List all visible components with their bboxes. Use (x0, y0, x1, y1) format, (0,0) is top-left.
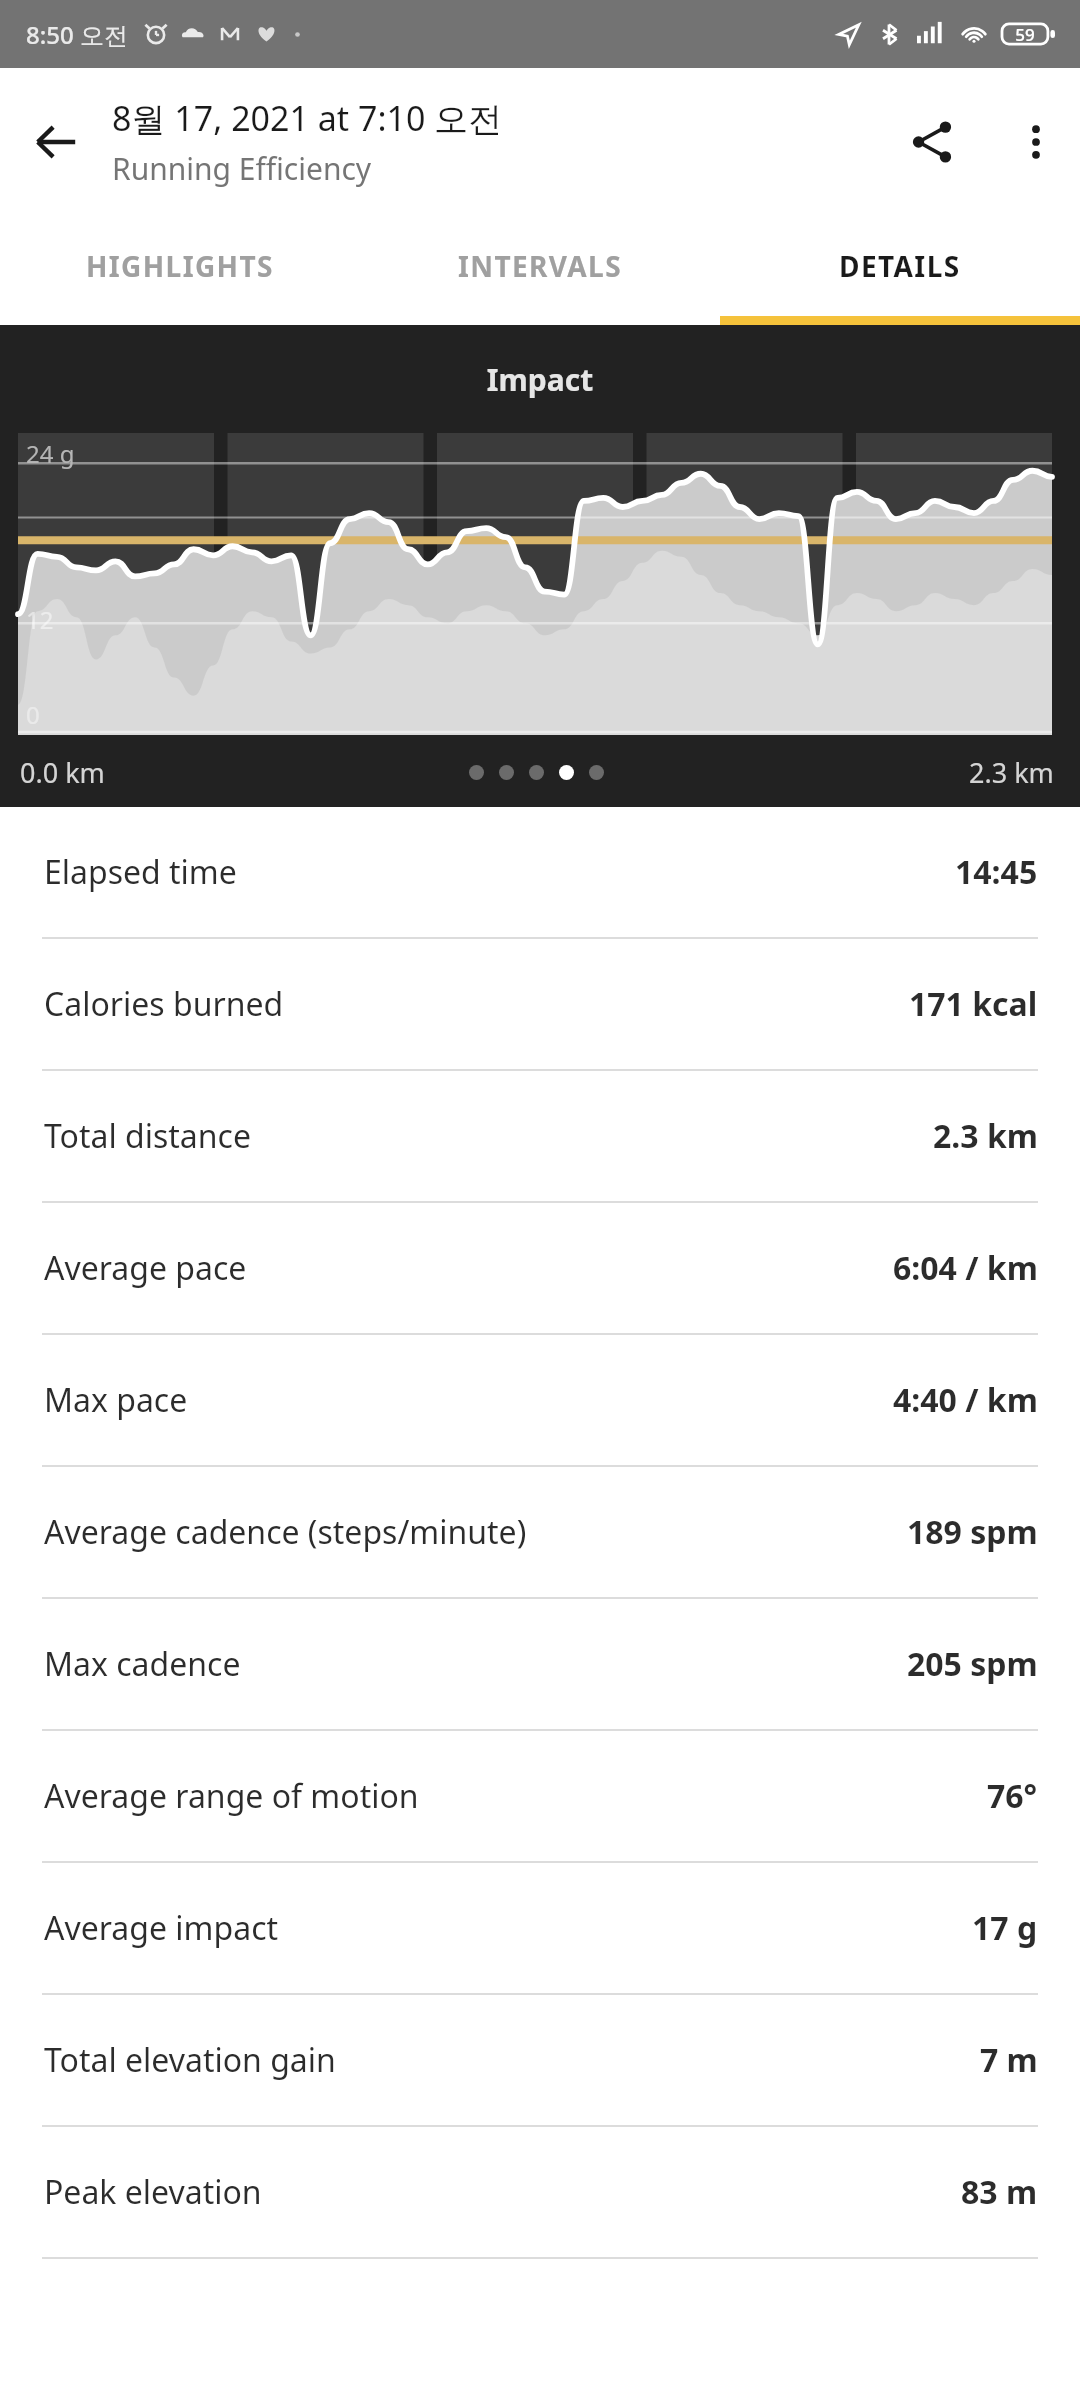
button[interactable]: DETAILS (720, 216, 1080, 316)
staticText: 8:50 오전 (26, 18, 128, 51)
button[interactable]: Average range of motion (0, 1731, 1080, 1863)
staticText: Peak elevation (44, 2170, 262, 2214)
staticText: DETAILS (839, 247, 961, 285)
staticText: 0 (26, 698, 40, 731)
button[interactable]: Average impact (0, 1863, 1080, 1995)
staticText: Total distance (44, 1114, 251, 1158)
staticText: Calories burned (44, 982, 284, 1026)
staticText: 76° (987, 1774, 1038, 1818)
button[interactable]: Calories burned (0, 939, 1080, 1071)
staticText: Average cadence (steps/minute) (44, 1510, 527, 1554)
button[interactable]: Average pace (0, 1203, 1080, 1335)
staticText: 59 (1002, 23, 1048, 46)
staticText: Elapsed time (44, 850, 237, 894)
button[interactable]: Max cadence (0, 1599, 1080, 1731)
staticText: Impact (0, 359, 1080, 400)
staticText: 205 spm (907, 1642, 1038, 1686)
button[interactable]: Average cadence (steps/minute) (0, 1467, 1080, 1599)
staticText: 2.3 km (933, 1114, 1038, 1158)
staticText: 4:40 / km (893, 1378, 1038, 1422)
staticText: INTERVALS (458, 247, 622, 285)
staticText: 83 m (961, 2170, 1038, 2214)
staticText: 2.3 km (969, 754, 1054, 791)
button[interactable]: More options (992, 68, 1080, 216)
button[interactable]: Max pace (0, 1335, 1080, 1467)
button[interactable]: Back (0, 68, 112, 216)
button[interactable]: Total elevation gain (0, 1995, 1080, 2127)
button[interactable]: Elapsed time (0, 807, 1080, 939)
button[interactable]: HIGHLIGHTS (0, 216, 360, 316)
staticText: 189 spm (907, 1510, 1038, 1554)
staticText: Max cadence (44, 1642, 241, 1686)
staticText: 12 (26, 603, 54, 636)
staticText: Total elevation gain (44, 2038, 336, 2082)
staticText: Average pace (44, 1246, 247, 1290)
button[interactable]: INTERVALS (360, 216, 720, 316)
button[interactable]: Share (872, 68, 992, 216)
button[interactable]: Peak elevation (0, 2127, 1080, 2259)
staticText: 0.0 km (20, 754, 105, 791)
staticText: Max pace (44, 1378, 188, 1422)
staticText: Average impact (44, 1906, 279, 1950)
staticText: 8월 17, 2021 at 7:10 오전 (112, 95, 503, 141)
staticText: 171 kcal (909, 982, 1038, 1026)
staticText: 17 g (972, 1906, 1038, 1950)
button[interactable]: Total distance (0, 1071, 1080, 1203)
staticText: HIGHLIGHTS (86, 247, 274, 285)
staticText: 24 g (26, 437, 75, 470)
staticText: 6:04 / km (893, 1246, 1038, 1290)
staticText: 14:45 (955, 850, 1038, 894)
staticText: Average range of motion (44, 1774, 419, 1818)
staticText: Running Efficiency (112, 148, 372, 189)
staticText: 7 m (980, 2038, 1038, 2082)
